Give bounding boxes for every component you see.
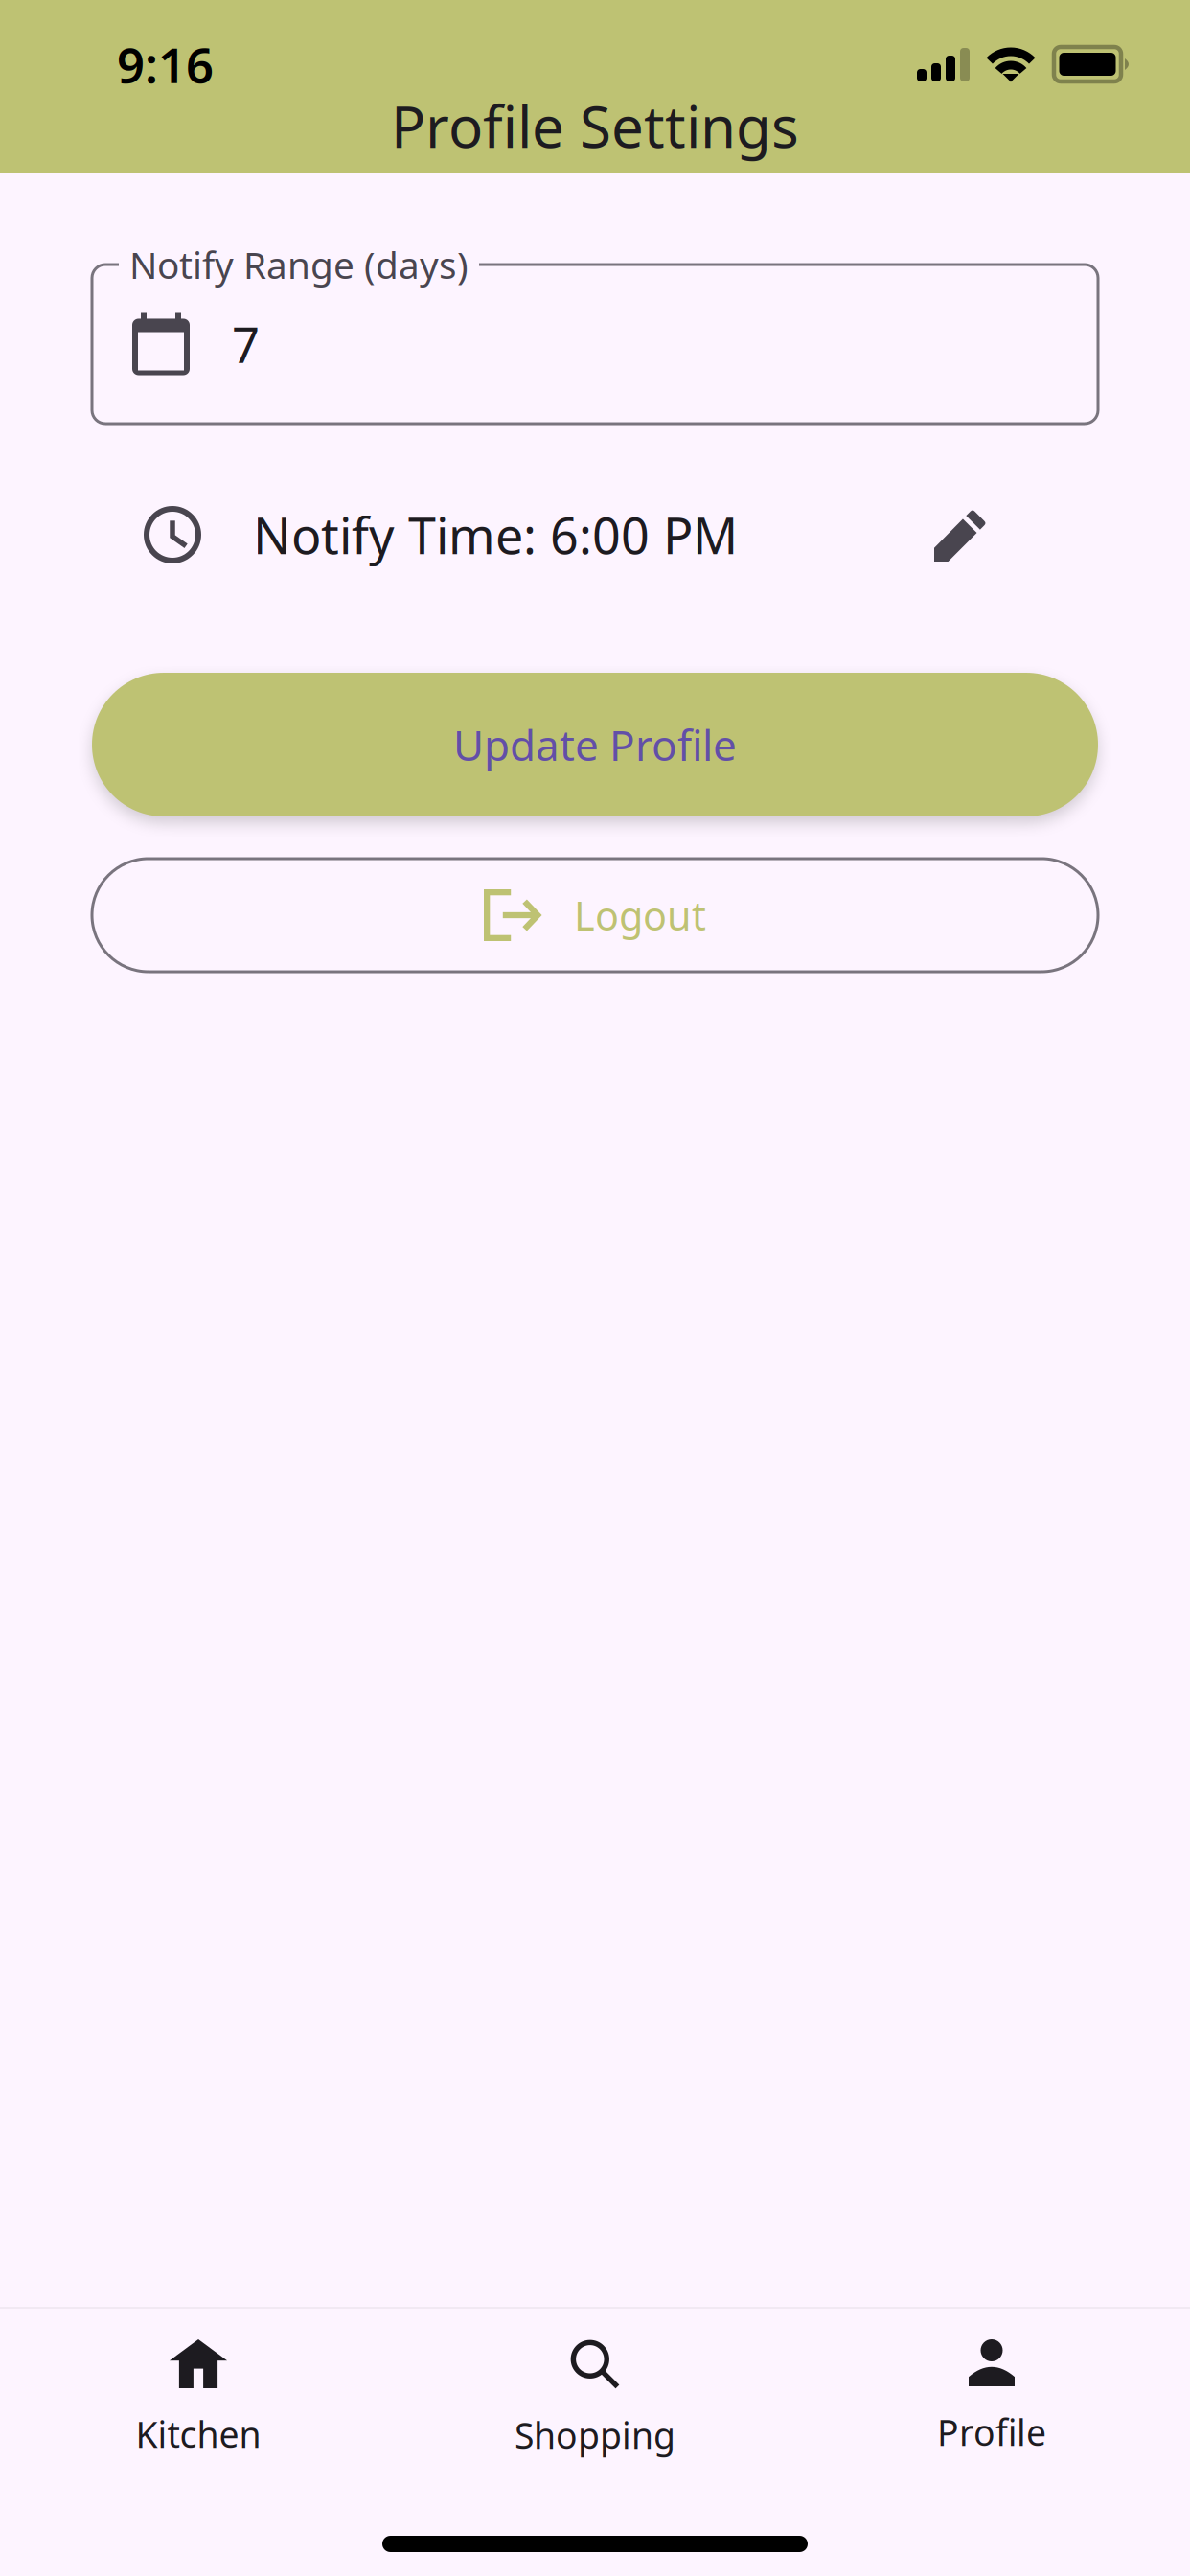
button[interactable]: Shopping <box>397 2309 793 2481</box>
staticText: Profile Settings <box>391 87 799 164</box>
button[interactable]: Update Profile <box>92 673 1098 816</box>
staticText: Kitchen <box>136 2410 261 2458</box>
staticText: Logout <box>574 889 706 942</box>
staticText: Notify Range (days) <box>129 240 469 289</box>
button[interactable]: 7 <box>92 264 1098 424</box>
button[interactable]: Profile <box>793 2309 1190 2481</box>
staticText: Shopping <box>515 2411 675 2459</box>
staticText: Update Profile <box>453 717 737 773</box>
staticText: Notify Time: 6:00 PM <box>253 502 738 568</box>
staticText: 9:16 <box>117 32 214 97</box>
staticText: Profile <box>937 2408 1046 2456</box>
staticText: 7 <box>232 312 260 376</box>
button[interactable]: Edit notify time <box>919 493 1003 577</box>
button[interactable]: Kitchen <box>0 2309 397 2481</box>
button[interactable]: Logout <box>92 859 1098 972</box>
